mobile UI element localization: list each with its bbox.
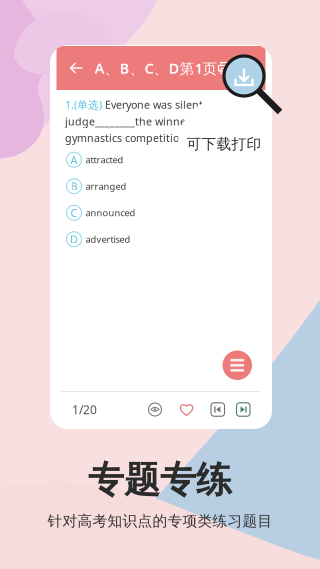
staticText: 专题专练 bbox=[88, 458, 232, 502]
staticText: gymnastics competition. bbox=[65, 131, 189, 145]
button[interactable]: Print bbox=[217, 46, 241, 90]
button[interactable]: B bbox=[66, 173, 261, 199]
staticText: arranged bbox=[85, 180, 126, 192]
button[interactable]: Back bbox=[56, 46, 94, 90]
button[interactable]: Favourite bbox=[174, 394, 199, 424]
button[interactable]: Download bbox=[241, 46, 265, 90]
staticText: judge________the winner of th bbox=[65, 114, 217, 128]
staticText: attracted bbox=[85, 154, 123, 166]
staticText: 可下载打印 bbox=[186, 135, 261, 153]
button[interactable]: Next question bbox=[231, 394, 255, 424]
button[interactable]: D bbox=[66, 226, 261, 252]
staticText: D bbox=[70, 232, 78, 246]
staticText: C bbox=[70, 206, 77, 220]
staticText: A、B、C、D第1页 bbox=[94, 58, 217, 78]
staticText: Everyone was silent as the bbox=[102, 97, 237, 112]
button[interactable]: Show answer bbox=[142, 394, 168, 424]
button[interactable]: A bbox=[66, 146, 261, 173]
staticText: B bbox=[70, 179, 77, 193]
staticText: 1/20 bbox=[72, 401, 97, 417]
button[interactable]: C bbox=[66, 199, 261, 226]
staticText: A bbox=[70, 153, 77, 167]
staticText: announced bbox=[85, 207, 135, 219]
staticText: advertised bbox=[85, 233, 130, 245]
staticText: 针对高考知识点的专项类练习题目 bbox=[47, 512, 272, 530]
button[interactable]: Menu bbox=[222, 350, 252, 380]
button[interactable]: Previous question bbox=[206, 394, 229, 424]
staticText: 1.(单选) bbox=[65, 97, 102, 112]
